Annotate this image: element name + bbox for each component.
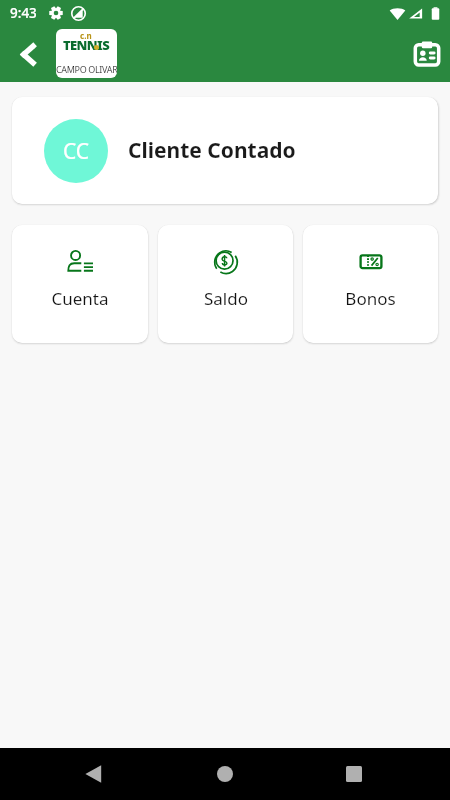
button[interactable]: Back: [6, 32, 50, 76]
button[interactable]: Bonos: [303, 225, 438, 343]
button[interactable]: CC: [12, 97, 438, 204]
staticText: c.n: [80, 30, 92, 41]
staticText: Saldo: [204, 287, 248, 310]
button[interactable]: Recents: [330, 750, 378, 798]
button[interactable]: c.n: [56, 29, 117, 78]
button[interactable]: Home: [201, 750, 249, 798]
staticText: CC: [63, 137, 90, 166]
staticText: Bonos: [345, 287, 396, 310]
staticText: Cliente Contado: [128, 136, 296, 165]
staticText: Cuenta: [51, 287, 109, 310]
staticText: TENNIS: [63, 36, 110, 54]
button[interactable]: Profile card: [407, 34, 447, 74]
button[interactable]: Back: [70, 750, 118, 798]
staticText: CAMPO OLIVAR: [56, 63, 117, 75]
button[interactable]: Cuenta: [12, 225, 148, 343]
staticText: 9:43: [10, 4, 37, 22]
button[interactable]: Saldo: [158, 225, 293, 343]
